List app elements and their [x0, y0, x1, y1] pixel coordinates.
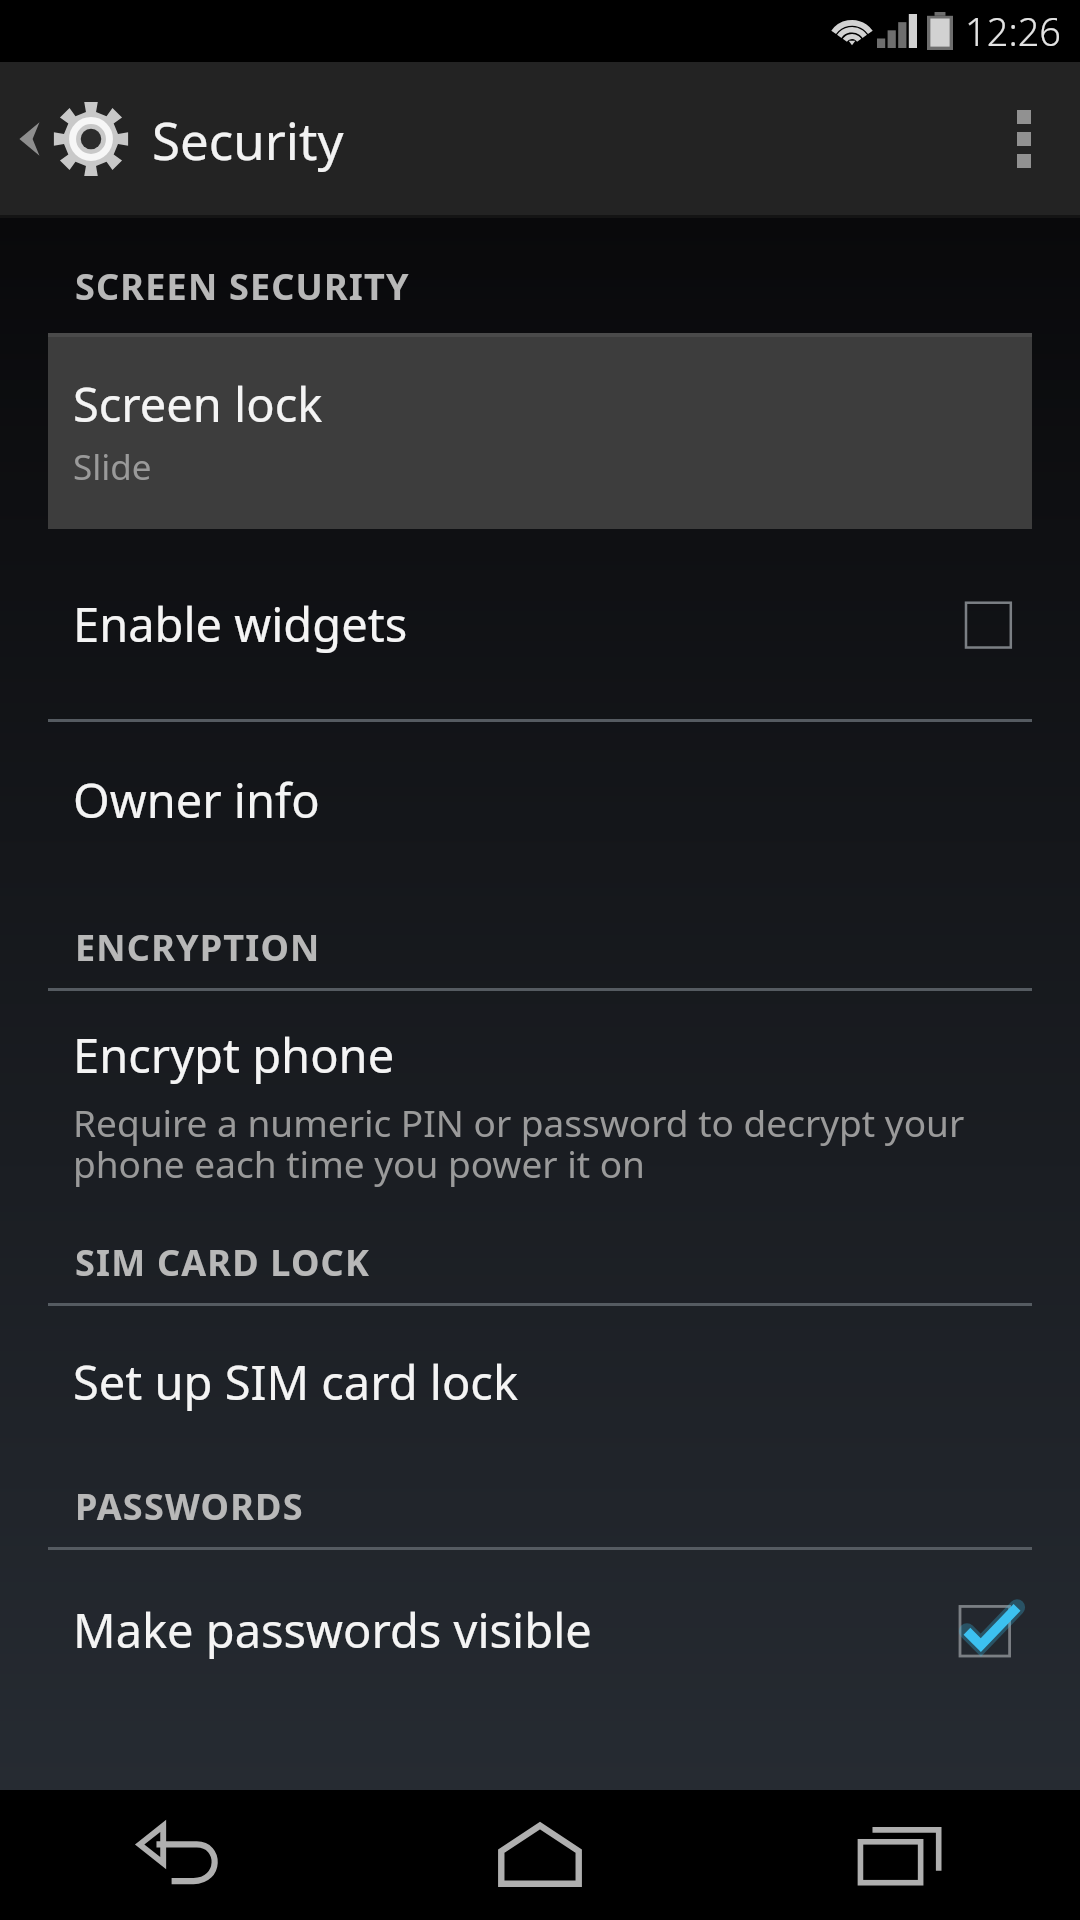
staticText: Require a numeric PIN or password to dec…	[73, 1097, 1020, 1188]
button[interactable]: More options	[968, 62, 1080, 215]
staticText: PASSWORDS	[75, 1482, 304, 1531]
staticText: Make passwords visible	[73, 1598, 960, 1662]
staticText: SIM CARD LOCK	[75, 1238, 370, 1287]
staticText: Screen lock	[73, 372, 323, 436]
staticText: Encrypt phone	[73, 1023, 395, 1087]
staticText: 12:26	[965, 5, 1062, 57]
staticText: Set up SIM card lock	[73, 1350, 518, 1414]
button[interactable]: Set up SIM card lock	[0, 1306, 1080, 1458]
button[interactable]: Enable widgets	[0, 529, 1080, 719]
staticText: Slide	[73, 443, 152, 491]
button[interactable]: Encrypt phone	[0, 991, 1080, 1210]
button[interactable]: Owner info	[0, 722, 1080, 877]
button[interactable]: Screen lock	[48, 333, 1032, 529]
button[interactable]: Recent apps	[720, 1790, 1080, 1920]
staticText: Security	[152, 105, 344, 174]
staticText: SCREEN SECURITY	[75, 262, 410, 311]
staticText: ENCRYPTION	[75, 923, 321, 972]
button[interactable]: Make passwords visible	[0, 1550, 1080, 1710]
button[interactable]: Navigate up, Security	[0, 98, 364, 180]
staticText: Enable widgets	[73, 592, 966, 656]
staticText: Owner info	[73, 768, 320, 832]
button[interactable]: Back	[0, 1790, 360, 1920]
button[interactable]: Home	[360, 1790, 720, 1920]
